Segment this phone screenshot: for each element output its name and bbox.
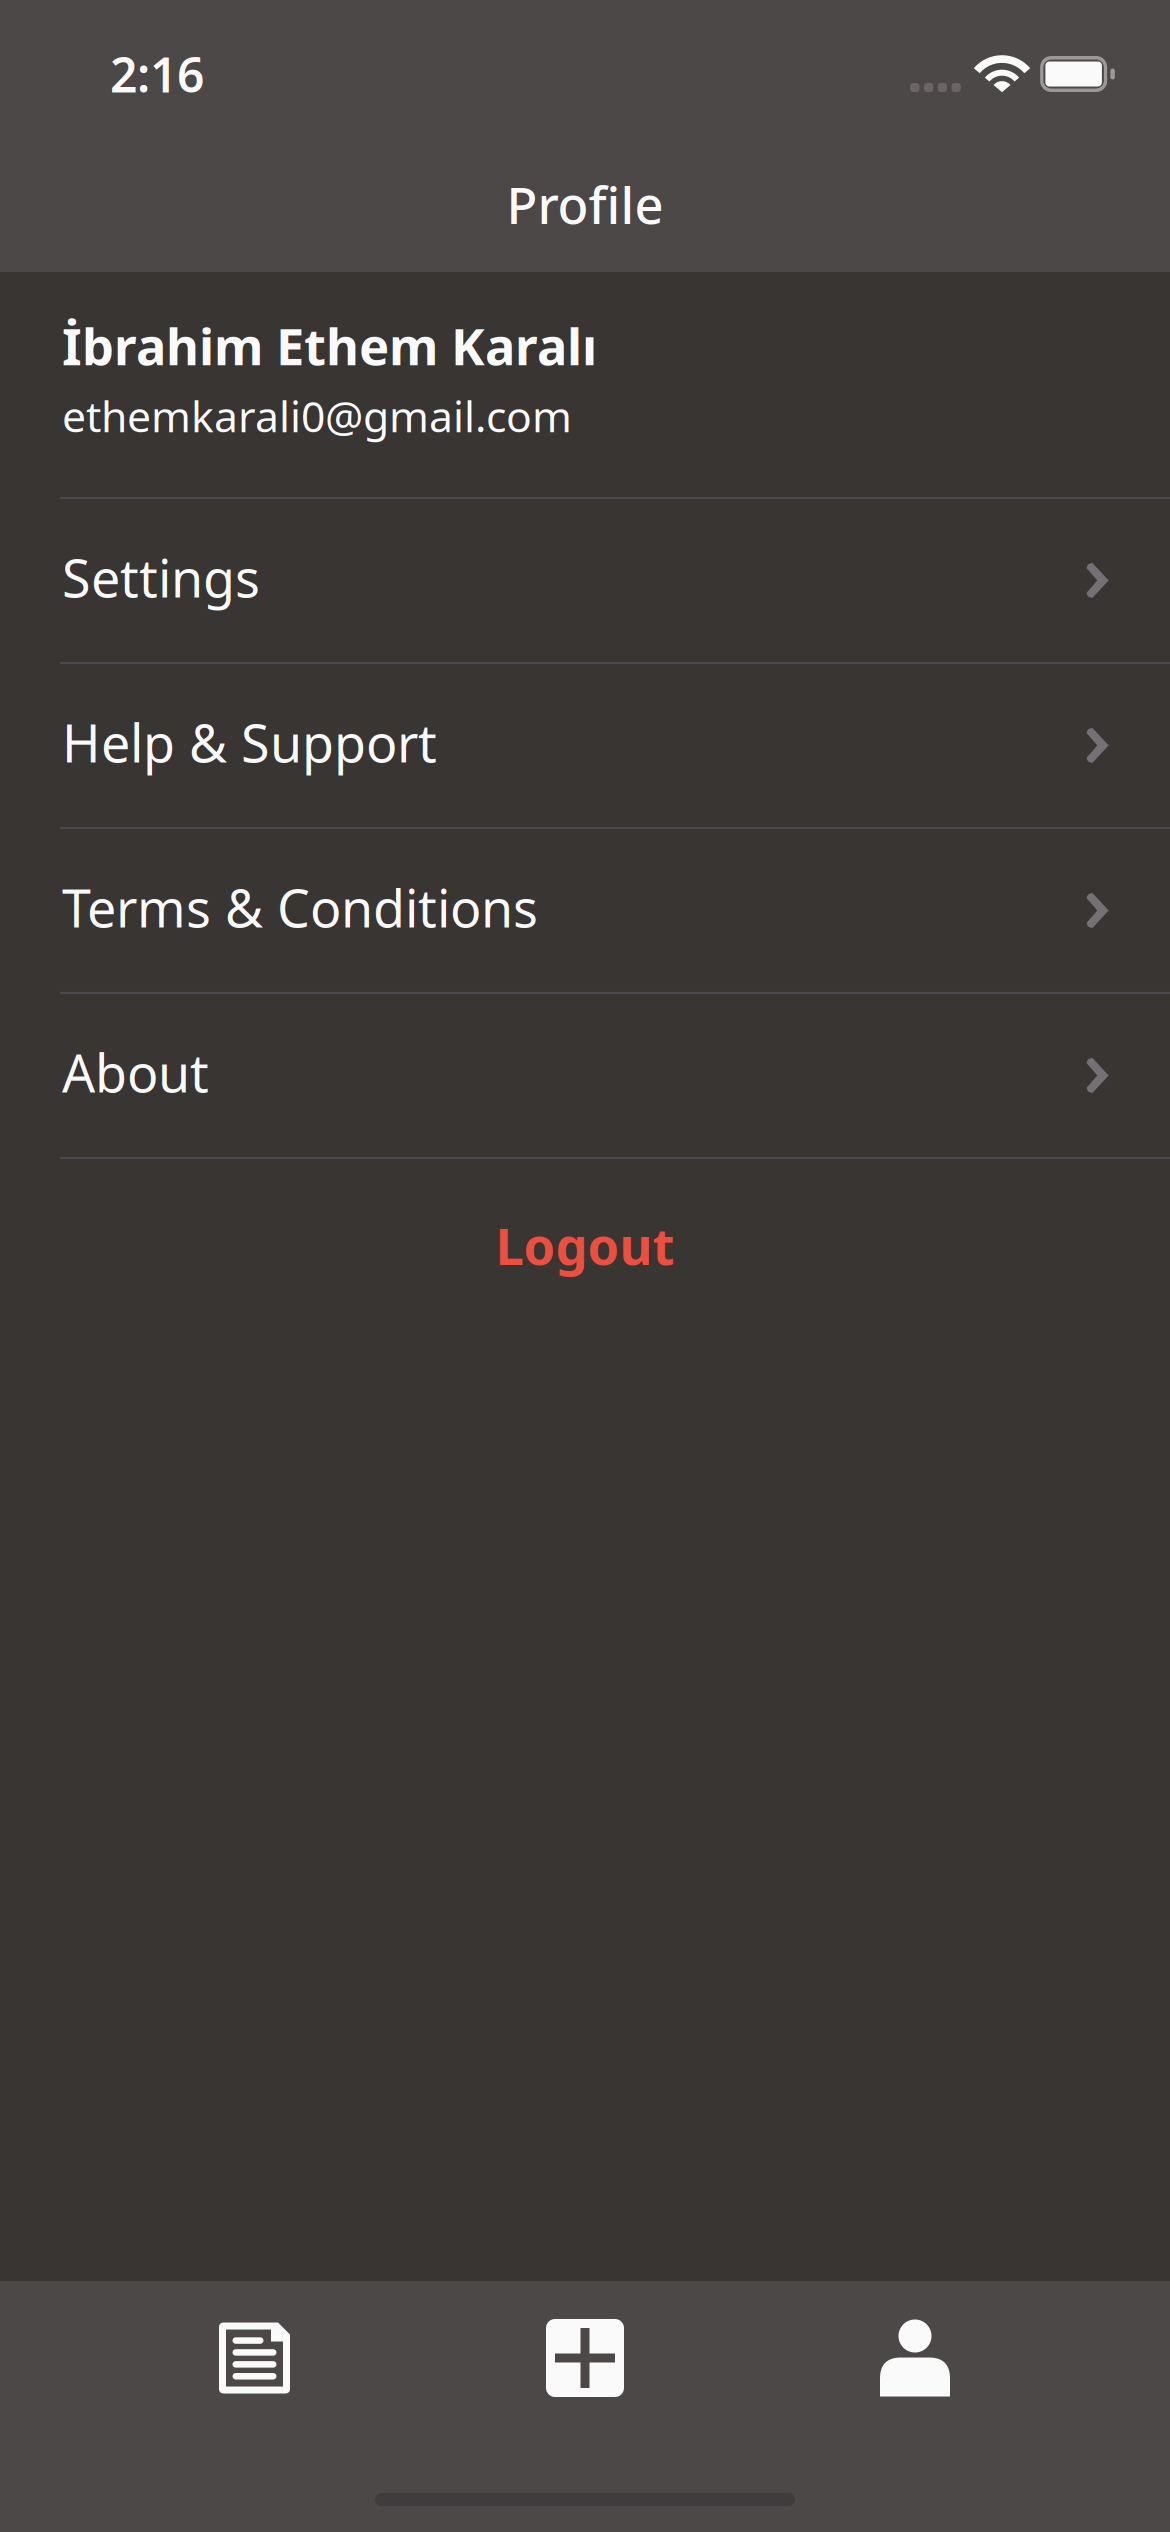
staticText: Profile bbox=[506, 171, 663, 238]
staticText: Logout bbox=[495, 1212, 674, 1279]
button[interactable]: Terms & Conditions bbox=[0, 829, 1170, 992]
staticText: Terms & Conditions bbox=[62, 873, 538, 942]
staticText: Settings bbox=[62, 543, 260, 612]
staticText: About bbox=[62, 1038, 209, 1107]
staticText: İbrahim Ethem Karalı bbox=[62, 312, 597, 379]
button[interactable]: Documents bbox=[0, 2298, 390, 2418]
button[interactable]: Add bbox=[390, 2298, 780, 2418]
button[interactable]: Settings bbox=[0, 499, 1170, 662]
staticText: ethemkarali0@gmail.com bbox=[62, 387, 572, 444]
staticText: 2:16 bbox=[110, 42, 204, 106]
button[interactable]: Logout bbox=[0, 1159, 1170, 1322]
button[interactable]: Profile bbox=[780, 2298, 1170, 2418]
button[interactable]: About bbox=[0, 994, 1170, 1157]
button[interactable]: Help & Support bbox=[0, 664, 1170, 827]
staticText: Help & Support bbox=[62, 708, 437, 777]
